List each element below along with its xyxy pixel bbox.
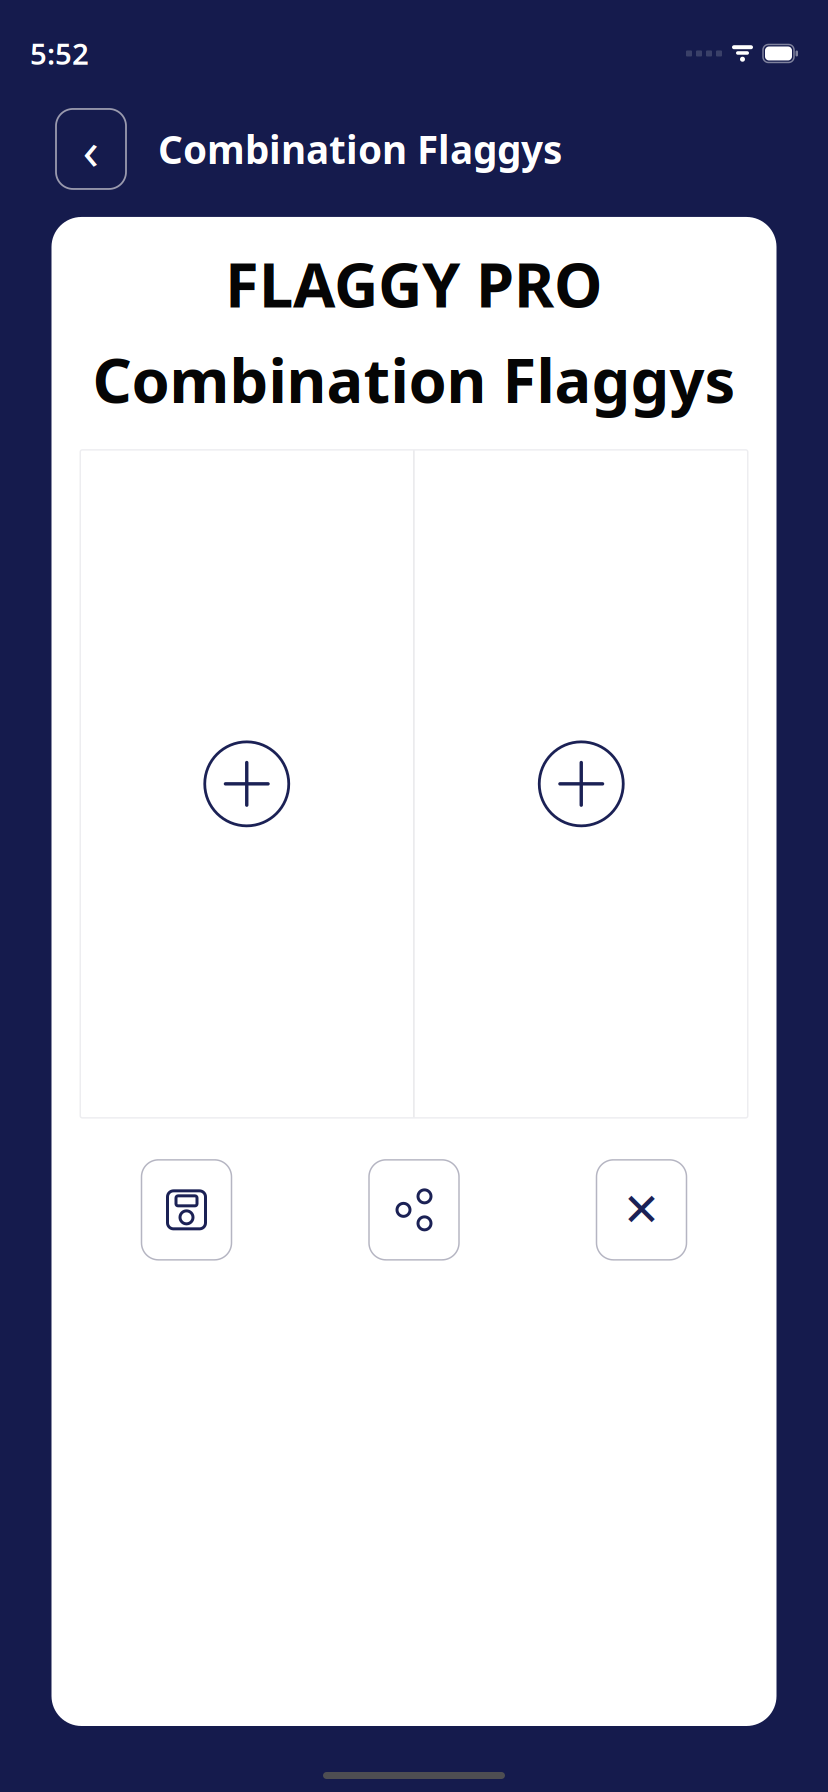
button[interactable]: Add second flag bbox=[415, 450, 748, 1118]
button[interactable]: Share bbox=[369, 1160, 459, 1260]
staticText: FLAGGY PRO bbox=[225, 243, 603, 324]
button[interactable]: Back bbox=[56, 109, 126, 189]
staticText: Combination Flaggys bbox=[158, 123, 562, 175]
button[interactable]: Save bbox=[141, 1160, 231, 1260]
staticText: ‹ bbox=[82, 113, 99, 184]
staticText: 5:52 bbox=[30, 34, 89, 73]
staticText: ✕ bbox=[622, 1184, 660, 1236]
button[interactable]: Close bbox=[596, 1160, 686, 1260]
staticText: Combination Flaggys bbox=[92, 338, 735, 420]
button[interactable]: Add first flag bbox=[80, 450, 413, 1118]
